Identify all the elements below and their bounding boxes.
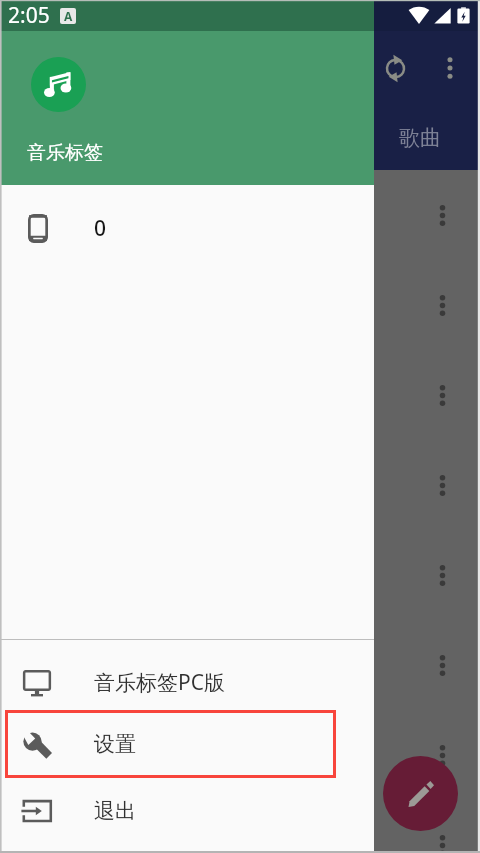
- button[interactable]: More: [424, 647, 461, 684]
- staticText: 设置: [94, 731, 136, 757]
- button[interactable]: 歌曲: [375, 114, 465, 162]
- button[interactable]: 退出: [0, 777, 374, 845]
- button[interactable]: More: [424, 467, 461, 504]
- button[interactable]: More options: [426, 44, 474, 92]
- button[interactable]: More: [424, 827, 461, 853]
- staticText: 歌曲: [399, 125, 441, 151]
- staticText: 退出: [94, 798, 136, 824]
- staticText: A: [64, 8, 73, 24]
- button[interactable]: Refresh: [371, 44, 419, 92]
- staticText: 0: [94, 214, 107, 243]
- staticText: 2:05: [8, 1, 50, 30]
- button[interactable]: More: [424, 737, 461, 774]
- button[interactable]: More: [424, 557, 461, 594]
- button[interactable]: 音乐标签PC版: [0, 648, 374, 716]
- button[interactable]: 0: [0, 198, 374, 258]
- button[interactable]: More: [424, 377, 461, 414]
- button[interactable]: More: [424, 197, 461, 234]
- button[interactable]: Edit: [383, 756, 458, 831]
- staticText: 音乐标签PC版: [94, 668, 225, 697]
- button[interactable]: More: [424, 287, 461, 324]
- staticText: 音乐标签: [27, 141, 103, 165]
- button[interactable]: 设置: [0, 710, 374, 778]
